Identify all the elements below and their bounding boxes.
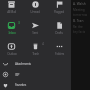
button[interactable]: Unread [23,0,47,19]
staticText: 3 [18,21,20,25]
button[interactable]: Sent [23,19,47,40]
staticText: Drafts [55,31,63,35]
staticText: Inbox [8,31,16,35]
staticText: Favorites [15,83,26,87]
button[interactable]: B. Tran [73,19,89,34]
button[interactable]: Favorites [0,80,71,90]
button[interactable]: VIP [0,69,71,80]
button[interactable]: A. Walsh [73,2,89,17]
button[interactable]: Inbox [0,19,23,40]
staticText: B. Tran [73,19,84,23]
button[interactable]: Folders [47,40,71,58]
button[interactable]: Attachments [0,58,71,69]
staticText: Flagged [54,10,64,14]
staticText: Folders [55,52,64,56]
staticText: VIP [15,73,20,77]
staticText: Unread [30,10,40,14]
staticText: Outbox [7,52,17,56]
button[interactable]: All Mail [0,0,23,19]
button[interactable]: Outbox [0,40,23,58]
staticText: All Mail [7,10,16,14]
staticText: key facts [73,30,86,34]
staticText: Meeting [73,8,85,12]
staticText: Trash [32,52,39,56]
staticText: Sent [32,31,38,35]
staticText: tomorrow [73,13,88,17]
button[interactable]: Flagged [47,0,71,19]
staticText: Attachments [15,62,31,66]
staticText: 4 [42,42,44,46]
staticText: Re: the [73,25,83,29]
button[interactable]: Drafts [47,19,71,40]
staticText: A. Walsh [73,2,86,6]
button[interactable]: Trash [23,40,47,58]
